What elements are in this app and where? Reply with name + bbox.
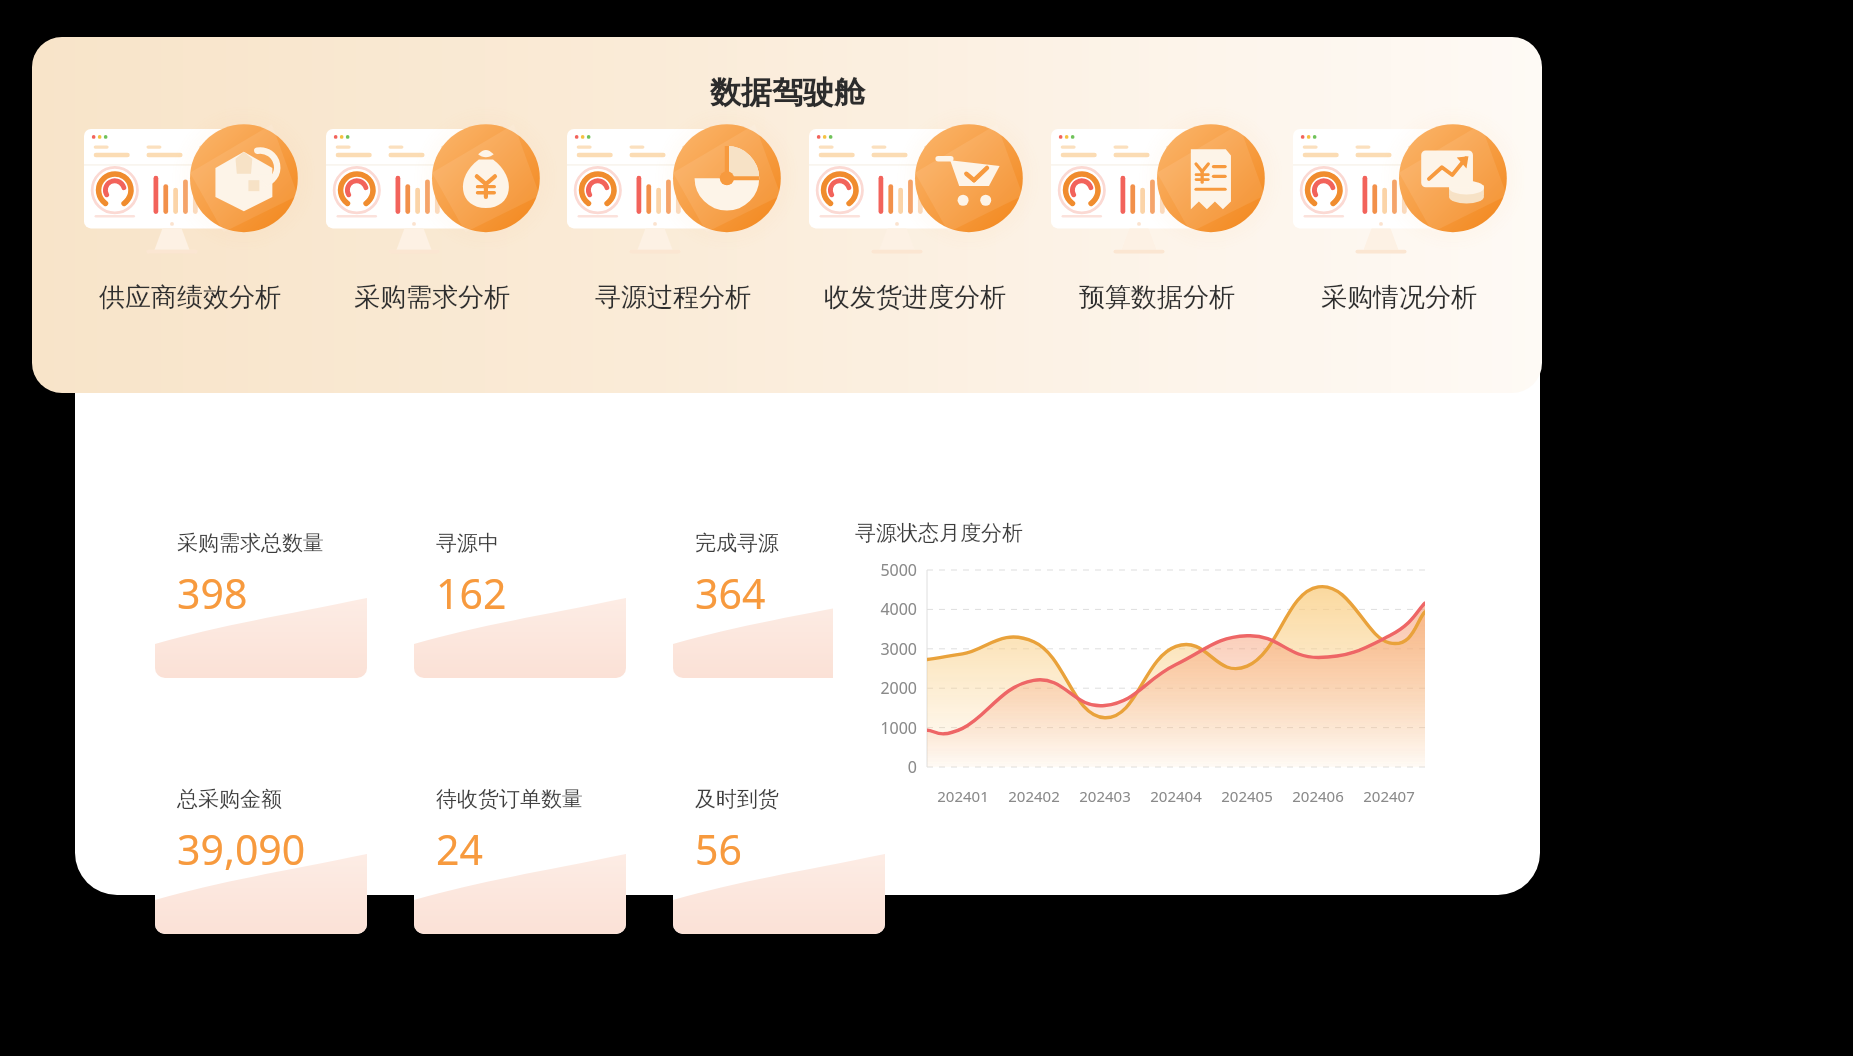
staticText: 数据驾驶舱 (710, 73, 865, 112)
button[interactable]: 寻源过程分析 (563, 125, 783, 340)
staticText: 1000 (880, 717, 917, 739)
staticText: 4000 (880, 598, 917, 620)
button[interactable]: 寻源中 (414, 494, 626, 678)
staticText: 56 (695, 821, 742, 877)
button[interactable]: 供应商绩效分析 (80, 125, 300, 340)
staticText: 采购需求总数量 (177, 530, 324, 556)
button[interactable]: 总采购金额 (155, 750, 367, 934)
staticText: 供应商绩效分析 (99, 281, 281, 314)
button[interactable]: 及时到货 (673, 750, 885, 934)
staticText: 寻源中 (436, 530, 499, 556)
staticText: 39,090 (177, 821, 306, 877)
staticText: 202407 (1363, 786, 1415, 806)
staticText: 0 (907, 756, 917, 778)
staticText: 采购需求分析 (354, 281, 510, 314)
staticText: 202402 (1008, 786, 1060, 806)
button[interactable]: 采购需求分析 (322, 125, 542, 340)
staticText: 202401 (937, 786, 989, 806)
staticText: 完成寻源 (695, 530, 779, 556)
staticText: 待收货订单数量 (436, 786, 583, 812)
button[interactable]: 预算数据分析 (1047, 125, 1267, 340)
button[interactable]: 待收货订单数量 (414, 750, 626, 934)
staticText: 及时到货 (695, 786, 779, 812)
staticText: 2000 (880, 677, 917, 699)
staticText: 364 (695, 565, 766, 621)
staticText: 5000 (880, 559, 917, 581)
staticText: 收发货进度分析 (824, 281, 1006, 314)
staticText: 202403 (1079, 786, 1131, 806)
staticText: 202405 (1221, 786, 1273, 806)
button[interactable]: 采购情况分析 (1289, 125, 1509, 340)
button[interactable]: 收发货进度分析 (805, 125, 1025, 340)
staticText: 采购情况分析 (1321, 281, 1477, 314)
staticText: 202406 (1292, 786, 1344, 806)
staticText: 202404 (1150, 786, 1202, 806)
staticText: 总采购金额 (177, 786, 282, 812)
button[interactable]: 采购需求总数量 (155, 494, 367, 678)
button[interactable]: 寻源状态月度分析 (833, 494, 1441, 834)
staticText: 398 (177, 565, 248, 621)
button[interactable]: 完成寻源 (673, 494, 885, 678)
staticText: 162 (436, 565, 507, 621)
staticText: 3000 (880, 638, 917, 660)
staticText: 寻源过程分析 (595, 281, 751, 314)
staticText: 24 (436, 821, 483, 877)
staticText: 预算数据分析 (1079, 281, 1235, 314)
staticText: 寻源状态月度分析 (855, 520, 1023, 546)
